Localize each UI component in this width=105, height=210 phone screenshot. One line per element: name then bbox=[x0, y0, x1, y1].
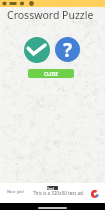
staticText: Test Ad bbox=[47, 186, 58, 190]
button[interactable]: Check answers bbox=[24, 37, 50, 63]
staticText: Crossword Puzzle bbox=[7, 8, 94, 22]
button[interactable]: Help bbox=[55, 37, 80, 62]
staticText: This is a 320x50 test ad. bbox=[33, 190, 85, 196]
button[interactable]: CLOSE bbox=[28, 69, 74, 78]
staticText: Nice job! bbox=[7, 189, 25, 195]
staticText: ? bbox=[63, 37, 73, 62]
staticText: CLOSE bbox=[44, 71, 59, 77]
